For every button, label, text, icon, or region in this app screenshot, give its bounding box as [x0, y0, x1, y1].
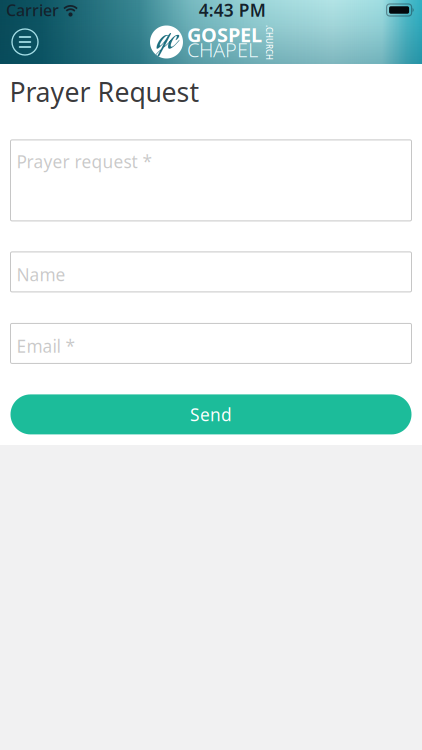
staticText: CHAPEL	[187, 36, 258, 63]
staticText: Send	[190, 403, 232, 426]
staticText: Name	[16, 263, 65, 286]
staticText: Email *	[16, 334, 75, 357]
staticText: GOSPEL	[187, 21, 262, 48]
button[interactable]: Menu	[0, 22, 45, 62]
staticText: 4:43 PM	[199, 0, 266, 21]
button[interactable]: Gospel Chapel	[150, 25, 272, 58]
staticText: gc	[157, 19, 176, 65]
button[interactable]: Name	[10, 252, 411, 292]
button[interactable]: Send	[10, 394, 411, 434]
staticText: Prayer request *	[16, 150, 152, 173]
button[interactable]: Email *	[10, 323, 411, 363]
staticText: Carrier	[6, 0, 59, 21]
staticText: Prayer Request	[9, 74, 199, 109]
staticText: .CHURCH	[251, 37, 286, 48]
button[interactable]: Prayer request *	[10, 140, 411, 221]
